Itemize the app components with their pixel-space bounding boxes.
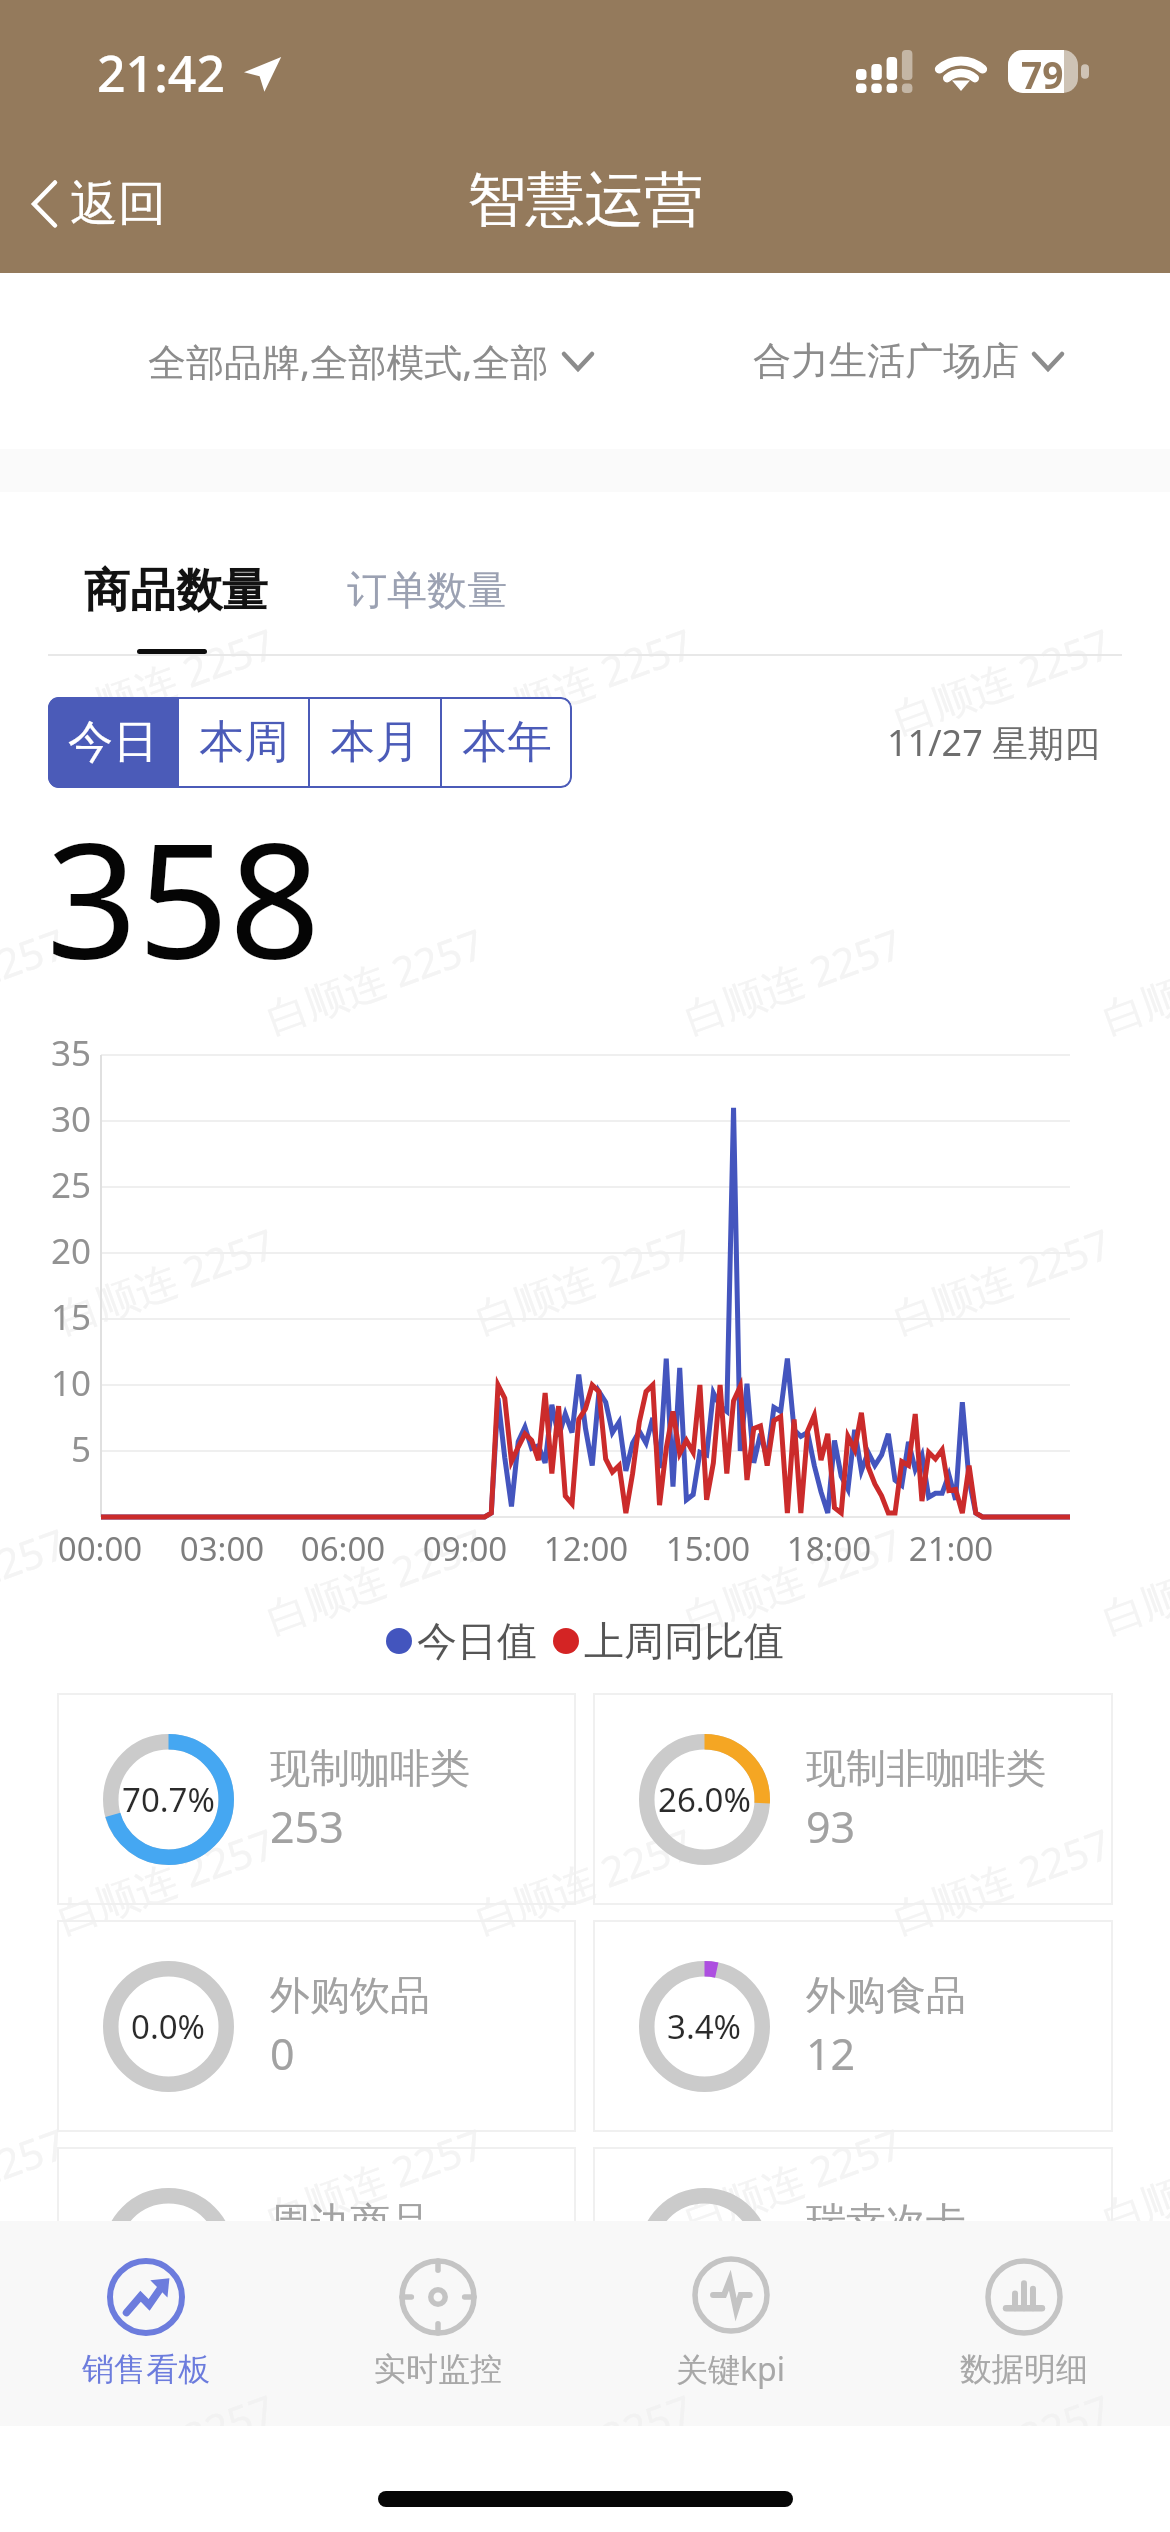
staticText: 本年 xyxy=(462,714,552,771)
button[interactable]: Key KPI xyxy=(584,2221,877,2426)
staticText: 白顺连 2257 xyxy=(885,1215,1119,1345)
staticText: 21:42 xyxy=(97,39,225,107)
staticText: 00:00 xyxy=(35,1526,165,1571)
staticText: 0.0% xyxy=(131,2231,206,2276)
button[interactable]: 全部品牌,全部模式,全部 xyxy=(124,309,618,413)
staticText: 15:00 xyxy=(643,1526,773,1571)
staticText: 关键kpi xyxy=(676,2347,786,2391)
staticText: 白顺连 2257 xyxy=(258,1515,492,1645)
staticText: 20 xyxy=(9,1227,91,1275)
staticText: 白顺连 2257 xyxy=(258,915,492,1045)
button[interactable]: 70.7% xyxy=(57,1693,576,1905)
staticText: 外购食品 xyxy=(806,1970,966,2020)
staticText: 白顺连 2257 xyxy=(467,2381,701,2426)
staticText: 93 xyxy=(806,1797,856,1856)
staticText: 79 xyxy=(1021,49,1064,92)
button[interactable]: 本月 xyxy=(310,697,440,788)
staticText: 智慧运营 xyxy=(467,163,703,237)
staticText: 全部品牌,全部模式,全部 xyxy=(148,335,549,387)
staticText: 白顺连 2257 xyxy=(49,1815,283,1945)
staticText: 0.0% xyxy=(667,2231,742,2276)
staticText: 253 xyxy=(270,1797,344,1856)
staticText: 白顺连 2257 xyxy=(49,2381,283,2426)
staticText: 15 xyxy=(9,1293,91,1341)
staticText: 0 xyxy=(270,2024,295,2083)
staticText: 白顺连 2257 xyxy=(676,1515,910,1645)
staticText: 26.0% xyxy=(658,1777,751,1822)
button[interactable]: 本年 xyxy=(442,697,572,788)
staticText: 21:00 xyxy=(886,1526,1016,1571)
button[interactable]: 今日 xyxy=(48,697,177,788)
staticText: 实时监控 xyxy=(374,2349,502,2389)
staticText: 35 xyxy=(9,1029,91,1077)
staticText: 12 xyxy=(806,2024,856,2083)
staticText: 白顺连 2257 xyxy=(0,2115,74,2245)
staticText: 18:00 xyxy=(764,1526,894,1571)
staticText: 订单数量 xyxy=(347,565,507,615)
button[interactable]: 3.4% xyxy=(593,1920,1113,2132)
staticText: 销售看板 xyxy=(82,2349,210,2389)
button[interactable]: Sales dashboard xyxy=(0,2221,292,2426)
staticText: 白顺连 2257 xyxy=(885,1815,1119,1945)
button[interactable]: Data detail xyxy=(877,2221,1170,2426)
button[interactable]: 26.0% xyxy=(593,1693,1113,1905)
staticText: 25 xyxy=(9,1161,91,1209)
staticText: 白顺连 2257 xyxy=(1094,2115,1170,2245)
staticText: 白顺连 2257 xyxy=(467,615,701,745)
staticText: 现制非咖啡类 xyxy=(806,1743,1046,1793)
staticText: 11/27 星期四 xyxy=(887,718,1101,767)
staticText: 白顺连 2257 xyxy=(467,1815,701,1945)
staticText: 合力生活广场店 xyxy=(753,337,1019,385)
staticText: 12:00 xyxy=(521,1526,651,1571)
staticText: 03:00 xyxy=(157,1526,287,1571)
staticText: 白顺连 2257 xyxy=(49,615,283,745)
staticText: 商品数量 xyxy=(84,562,268,620)
staticText: 06:00 xyxy=(278,1526,408,1571)
staticText: 白顺连 2257 xyxy=(0,1515,74,1645)
staticText: 瑞幸次卡 xyxy=(806,2197,966,2247)
staticText: 周边商品 xyxy=(270,2197,430,2247)
staticText: 358 xyxy=(46,787,321,999)
button[interactable]: 商品数量 xyxy=(60,492,292,657)
staticText: 本月 xyxy=(330,714,420,771)
staticText: 白顺连 2257 xyxy=(49,1215,283,1345)
staticText: 今日值 xyxy=(417,1616,537,1666)
staticText: 5 xyxy=(9,1425,91,1473)
button[interactable]: 订单数量 xyxy=(323,492,531,615)
staticText: 数据明细 xyxy=(960,2349,1088,2389)
staticText: 白顺连 2257 xyxy=(467,1215,701,1345)
button[interactable]: 0.0% xyxy=(57,1920,576,2132)
staticText: 今日 xyxy=(68,714,158,771)
staticText: 现制咖啡类 xyxy=(270,1743,470,1793)
button[interactable]: 返回 xyxy=(22,160,188,248)
staticText: 返回 xyxy=(70,174,166,234)
staticText: 本周 xyxy=(199,714,289,771)
staticText: 30 xyxy=(9,1095,91,1143)
staticText: 70.7% xyxy=(122,1777,215,1822)
staticText: 0.0% xyxy=(131,2004,206,2049)
button[interactable]: 0.0% xyxy=(593,2147,1113,2359)
staticText: 外购饮品 xyxy=(270,1970,430,2020)
button[interactable]: Live monitoring xyxy=(292,2221,584,2426)
staticText: 白顺连 2257 xyxy=(885,615,1119,745)
button[interactable]: 本周 xyxy=(179,697,308,788)
staticText: 10 xyxy=(9,1359,91,1407)
staticText: 3.4% xyxy=(667,2004,742,2049)
staticText: 白顺连 2257 xyxy=(0,915,74,1045)
button[interactable]: 0.0% xyxy=(57,2147,576,2359)
button[interactable]: 合力生活广场店 xyxy=(729,311,1088,411)
staticText: 白顺连 2257 xyxy=(885,2381,1119,2426)
staticText: 白顺连 2257 xyxy=(676,2115,910,2245)
staticText: 09:00 xyxy=(400,1526,530,1571)
staticText: 上周同比值 xyxy=(584,1616,784,1666)
staticText: 白顺连 2257 xyxy=(258,2115,492,2245)
